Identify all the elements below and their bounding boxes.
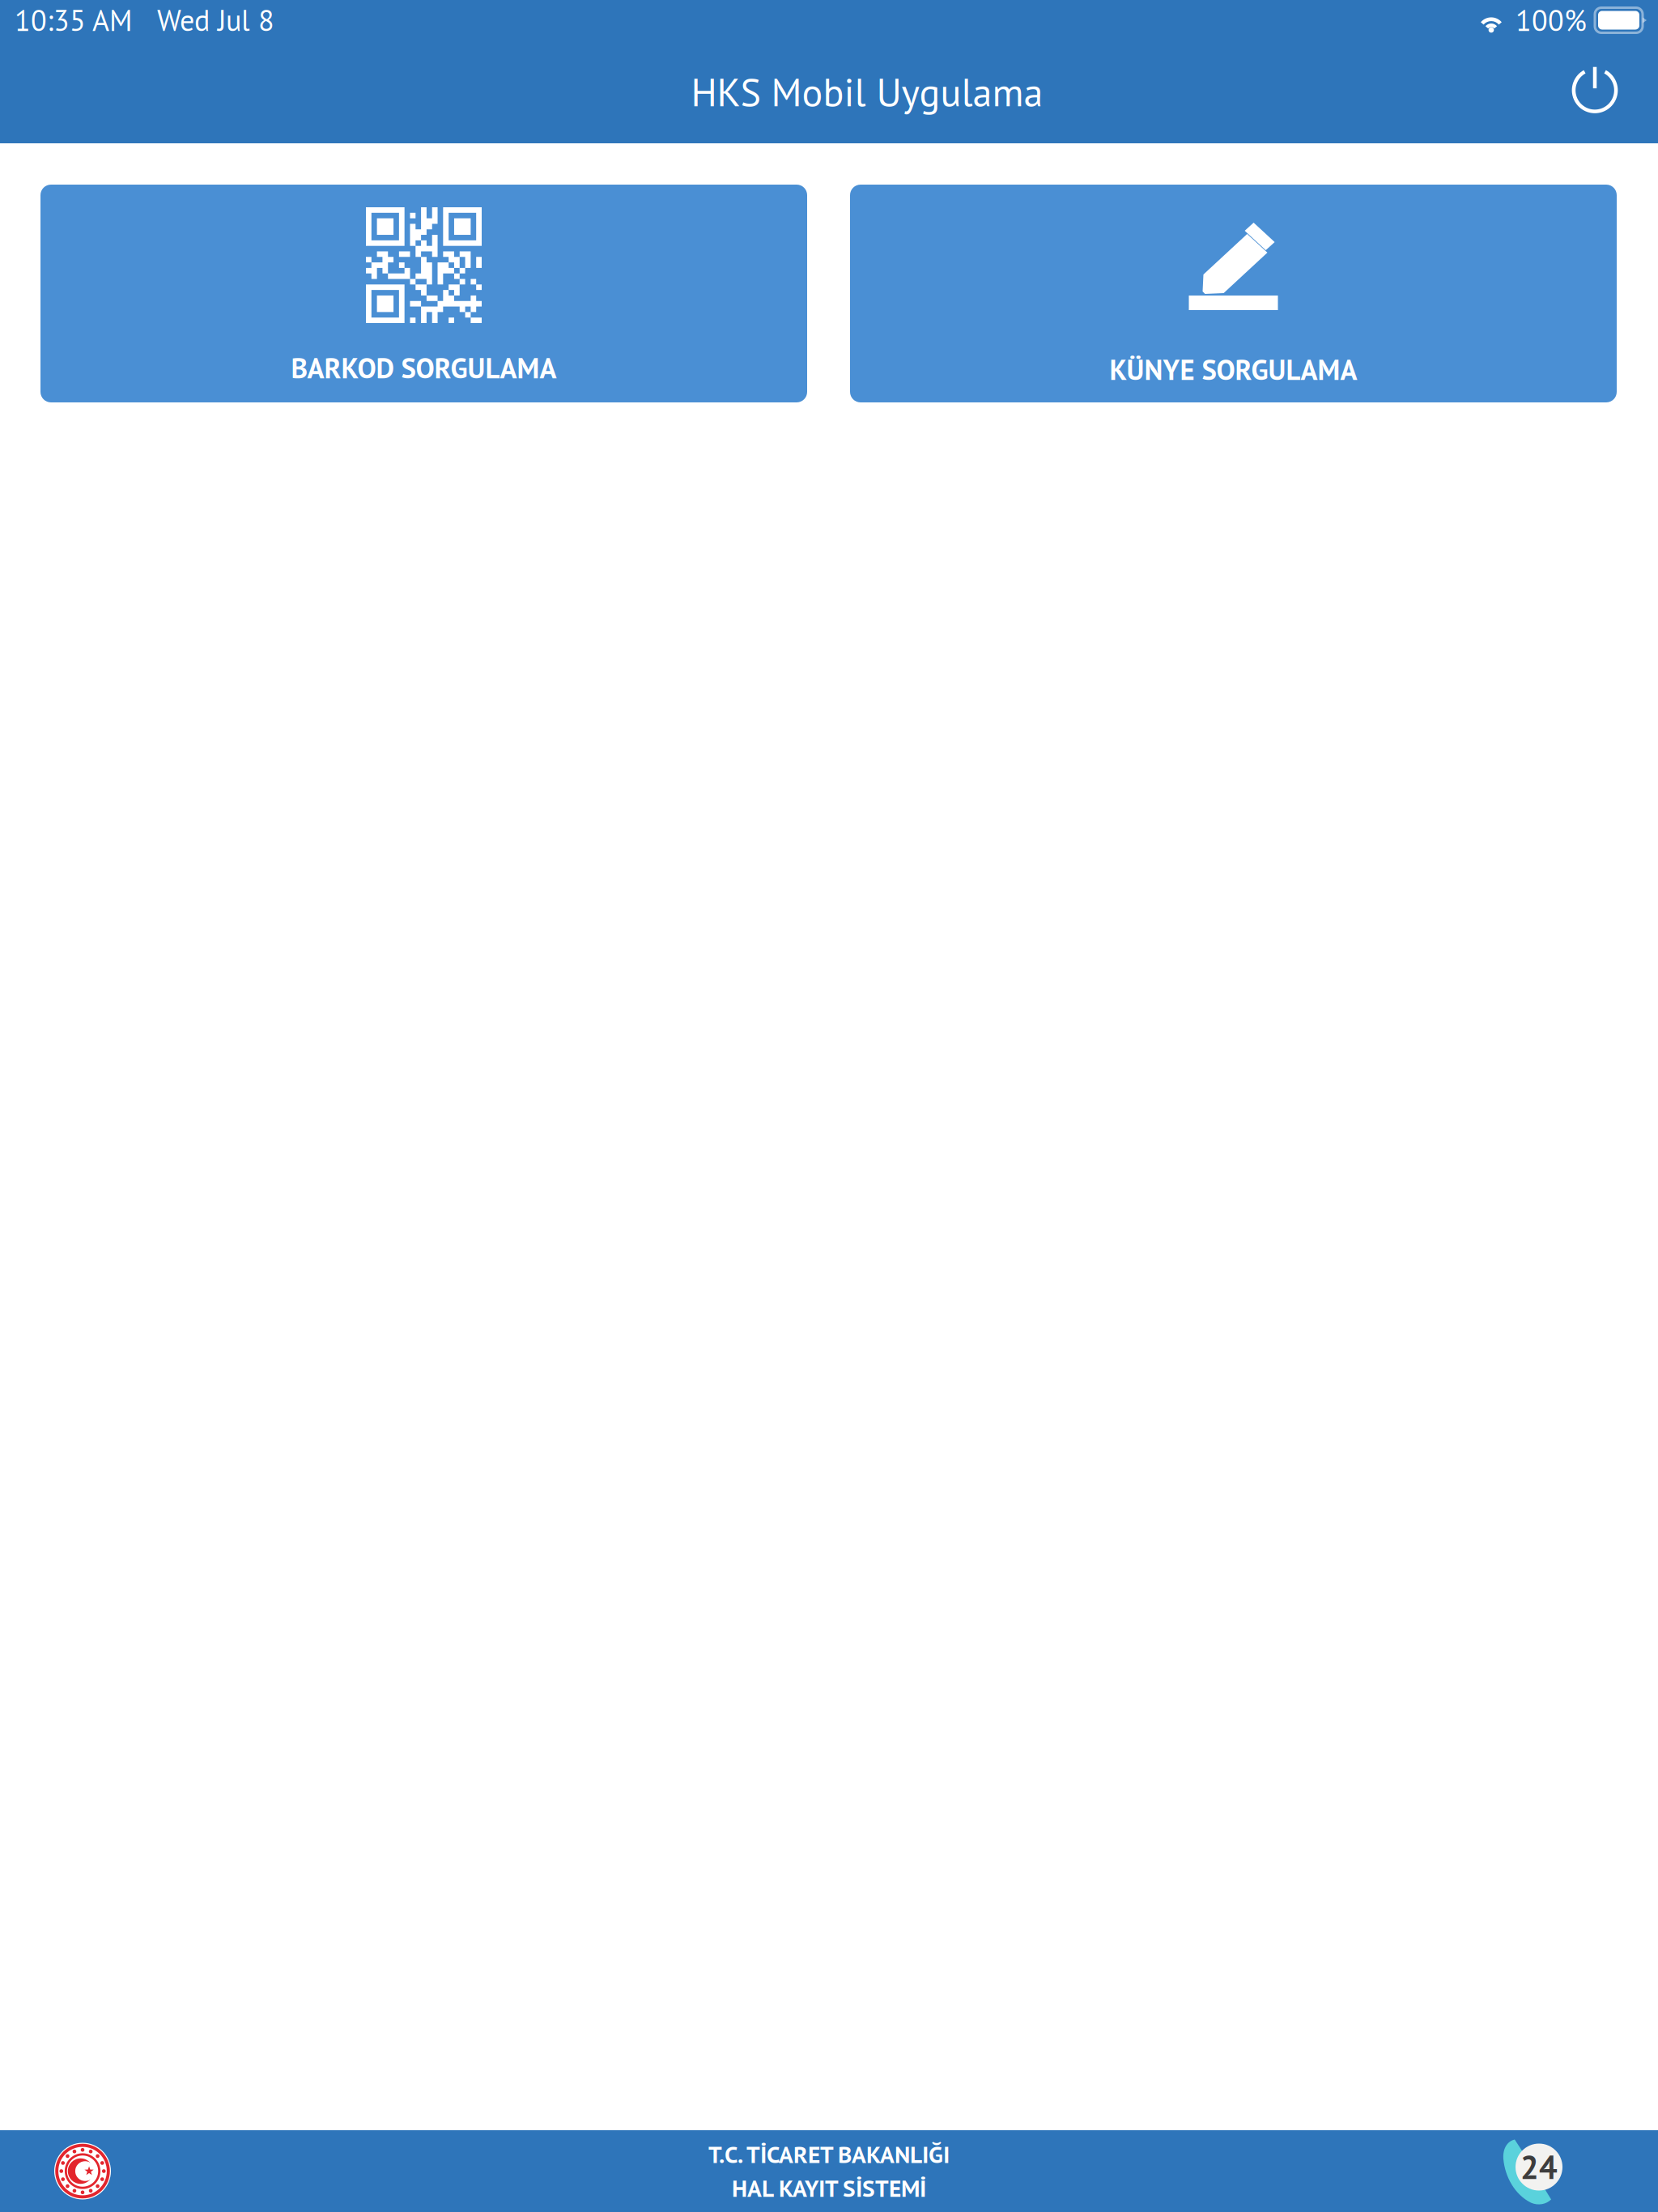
button[interactable]: KÜNYE SORGULAMA bbox=[850, 185, 1617, 402]
button[interactable]: Çıkış bbox=[1551, 56, 1658, 128]
button[interactable]: Çağrı merkezi 24 saat bbox=[1502, 2138, 1562, 2204]
staticText: HKS Mobil Uygulama bbox=[691, 67, 1043, 117]
staticText: T.C. TİCARET BAKANLIĞI bbox=[708, 2139, 950, 2169]
staticText: Wed Jul 8 bbox=[157, 1, 274, 39]
staticText: KÜNYE SORGULAMA bbox=[1110, 351, 1357, 388]
staticText: 100% bbox=[1516, 1, 1587, 39]
staticText: 24 bbox=[1520, 2146, 1558, 2188]
button[interactable]: BARKOD SORGULAMA bbox=[40, 185, 807, 402]
staticText: BARKOD SORGULAMA bbox=[291, 350, 557, 386]
staticText: 10:35 AM bbox=[15, 1, 132, 39]
staticText: HAL KAYIT SİSTEMİ bbox=[732, 2173, 926, 2203]
